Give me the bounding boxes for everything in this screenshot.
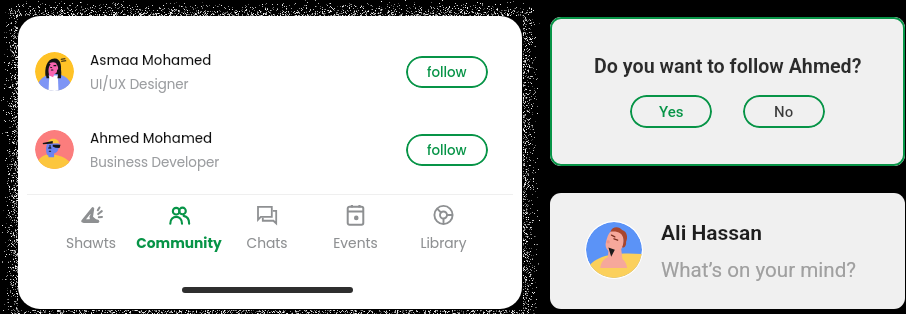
staticText: follow: [427, 63, 467, 82]
button[interactable]: Community: [135, 205, 223, 269]
staticText: Business Developer: [90, 153, 220, 172]
button[interactable]: Profile photo of Ali Hassan: [585, 221, 643, 279]
staticText: Events: [333, 234, 378, 253]
button[interactable]: follow: [406, 56, 488, 88]
button[interactable]: No: [743, 95, 825, 128]
button[interactable]: Profile photo of Ali Hassan: [550, 193, 905, 309]
button[interactable]: Yes: [630, 95, 712, 128]
staticText: Do you want to follow Ahmed?: [594, 55, 862, 78]
button[interactable]: follow: [406, 134, 488, 166]
staticText: No: [774, 103, 794, 121]
button[interactable]: Profile photo of Ahmed Mohamed: [18, 124, 522, 175]
staticText: Shawts: [66, 234, 116, 253]
staticText: follow: [427, 141, 467, 160]
button[interactable]: Profile photo of Asmaa Mohamed: [18, 46, 522, 97]
staticText: Chats: [246, 234, 288, 253]
staticText: Community: [136, 234, 222, 253]
button[interactable]: Library: [399, 205, 487, 269]
button[interactable]: Profile photo of Ahmed Mohamed: [35, 130, 74, 169]
staticText: Asmaa Mohamed: [90, 51, 212, 70]
staticText: Yes: [659, 103, 684, 121]
button[interactable]: Chats: [223, 205, 311, 269]
staticText: Library: [420, 234, 467, 253]
staticText: Ali Hassan: [661, 221, 763, 246]
button[interactable]: Profile photo of Asmaa Mohamed: [35, 52, 74, 91]
staticText: Ahmed Mohamed: [90, 129, 213, 148]
button[interactable]: Events: [311, 205, 399, 269]
button[interactable]: Shawts: [47, 205, 135, 269]
staticText: UI/UX Designer: [90, 75, 189, 94]
staticText: What’s on your mind?: [661, 258, 857, 282]
